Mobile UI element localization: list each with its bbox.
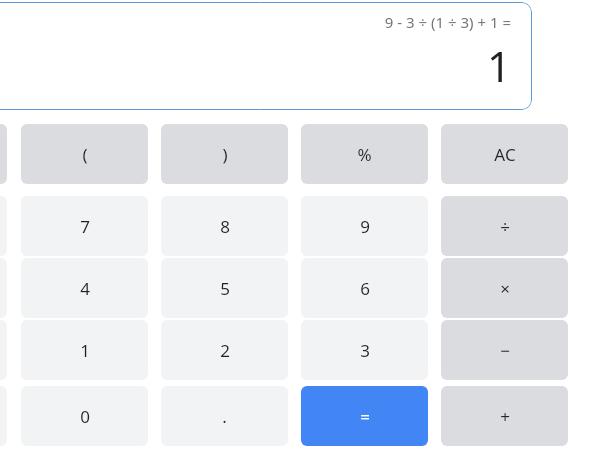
button[interactable]: 0 [21,386,148,446]
button[interactable]: 4 [21,258,148,318]
staticText: 1 [486,37,511,94]
button[interactable]: 7 [21,196,148,256]
staticText: 8 [220,215,230,238]
button[interactable]: × [441,258,568,318]
staticText: ) [222,143,228,166]
staticText: × [500,277,510,300]
staticText: 0 [80,405,90,428]
button[interactable]: 1 [21,320,148,380]
staticText: 9 [360,215,370,238]
staticText: 1 [80,339,90,362]
button[interactable]: % [301,124,428,184]
staticText: ( [82,143,88,166]
staticText: = [360,405,370,428]
staticText: ÷ [500,215,510,238]
staticText: AC [494,143,516,166]
staticText: 9 - 3 ÷ (1 ÷ 3) + 1 = [384,12,511,32]
staticText: . [222,405,227,428]
button[interactable]: CE [0,124,7,184]
button[interactable]: 3 [301,320,428,380]
staticText: 5 [220,277,230,300]
button[interactable]: ) [161,124,288,184]
button[interactable]: + [441,386,568,446]
button[interactable]: ( [21,124,148,184]
staticText: − [500,339,510,362]
button[interactable]: 2 [161,320,288,380]
button[interactable]: 8 [161,196,288,256]
button[interactable]: AC [441,124,568,184]
staticText: 3 [360,339,370,362]
button[interactable]: . [161,386,288,446]
staticText: + [500,405,510,428]
button[interactable]: 6 [301,258,428,318]
staticText: 4 [80,277,90,300]
button[interactable]: 5 [161,258,288,318]
button[interactable]: − [441,320,568,380]
button[interactable]: ÷ [441,196,568,256]
staticText: 7 [80,215,90,238]
button[interactable]: 9 [301,196,428,256]
button[interactable]: = [301,386,428,446]
staticText: 2 [220,339,230,362]
staticText: 6 [360,277,370,300]
staticText: % [357,143,372,166]
